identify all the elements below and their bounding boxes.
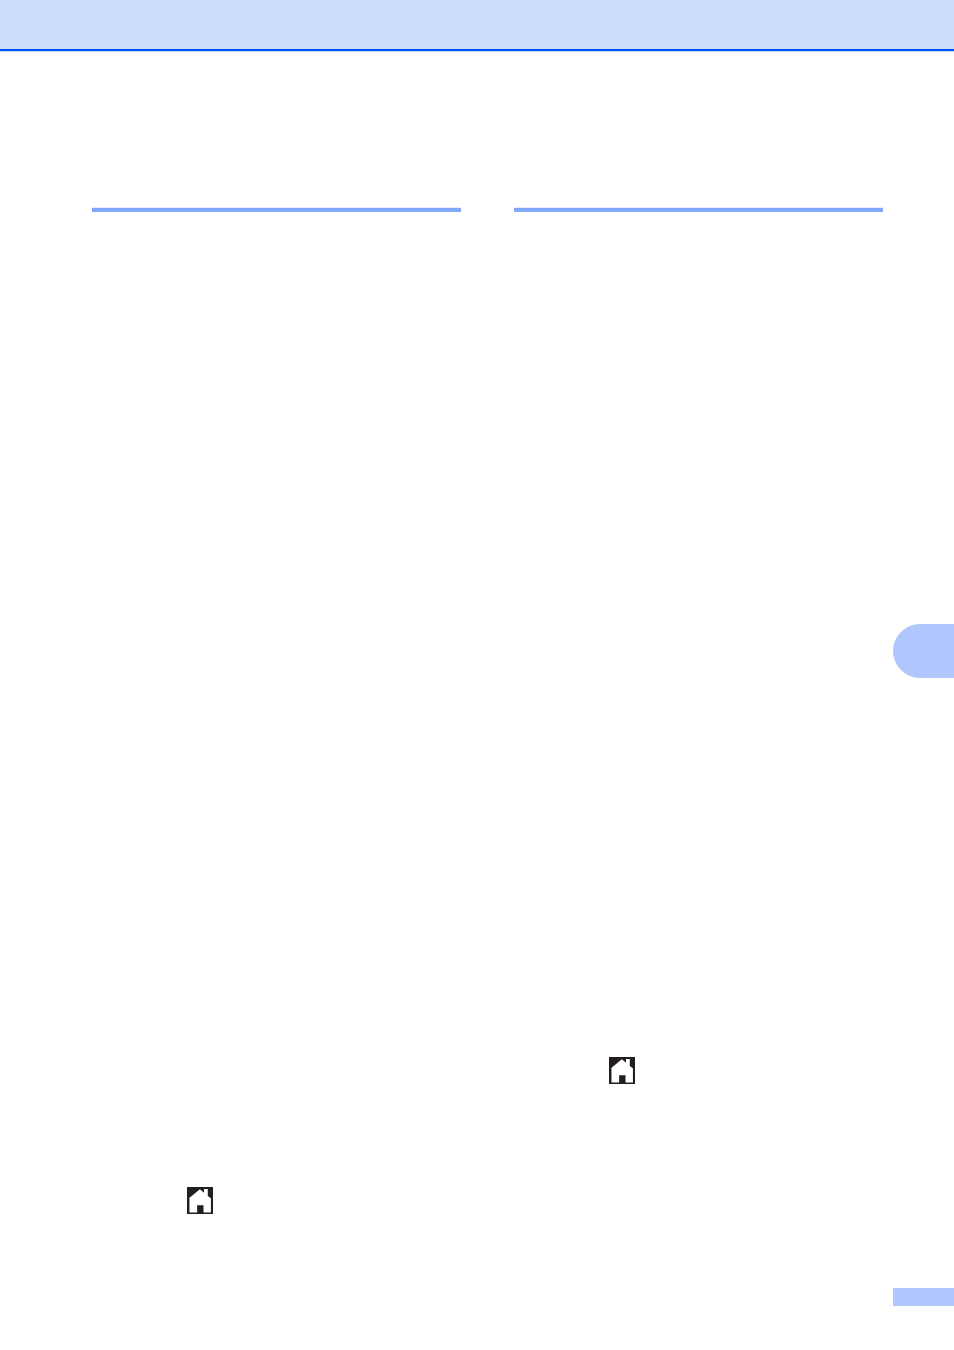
- button[interactable]: Home: [609, 1057, 635, 1084]
- button[interactable]: Home: [187, 1187, 213, 1214]
- button[interactable]: Chapter tab: [893, 624, 954, 678]
